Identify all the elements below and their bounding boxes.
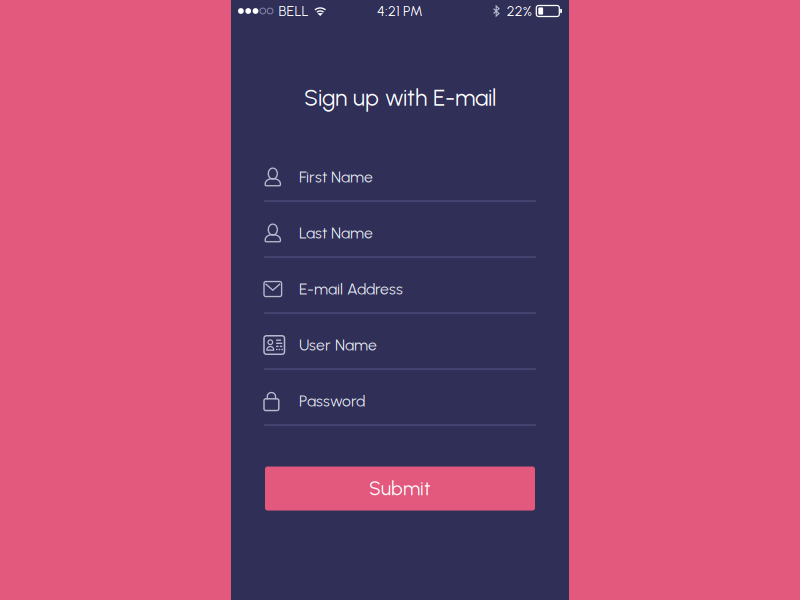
staticText: Last Name [299, 224, 373, 242]
staticText: Sign up with E-mail [304, 84, 496, 111]
button[interactable]: Password [264, 369, 536, 425]
staticText: 4:21 PM [377, 2, 423, 19]
staticText: Submit [369, 477, 431, 500]
button[interactable]: E-mail Address [264, 257, 536, 313]
button[interactable]: User Name [264, 313, 536, 369]
button[interactable]: First Name [264, 145, 536, 201]
staticText: BELL [278, 2, 308, 19]
staticText: First Name [299, 168, 373, 186]
staticText: Password [299, 392, 365, 410]
staticText: 22% [507, 2, 532, 19]
button[interactable]: Submit [265, 466, 535, 510]
button[interactable]: Last Name [264, 201, 536, 257]
staticText: User Name [299, 336, 377, 354]
staticText: E-mail Address [299, 280, 403, 298]
